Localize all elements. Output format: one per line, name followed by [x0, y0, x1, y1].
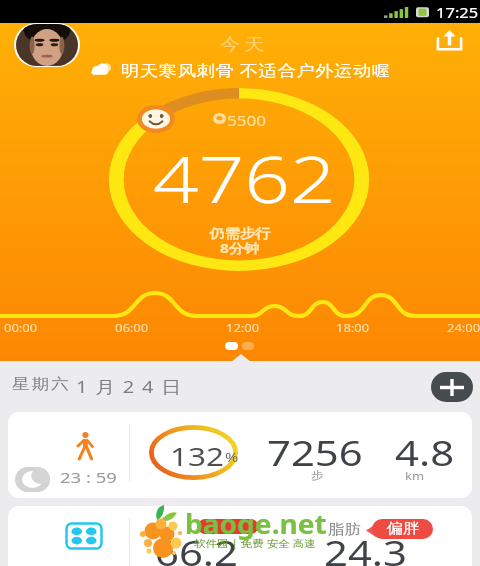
staticText: 7256	[267, 430, 363, 476]
staticText: km	[405, 468, 425, 483]
button[interactable]: 23 : 59	[8, 412, 472, 498]
staticText: 软件园 | 免费 安全 高速	[194, 536, 316, 550]
staticText: 今天	[218, 34, 266, 55]
staticText: 23 : 59	[60, 467, 118, 487]
staticText: 5500	[227, 110, 267, 130]
staticText: 66.2	[155, 530, 239, 566]
button[interactable]: Add	[431, 372, 473, 402]
staticText: 明天寒风刺骨 不适合户外运动喔	[121, 59, 391, 80]
staticText: 132	[170, 439, 224, 474]
staticText: 06:00	[115, 320, 149, 335]
button[interactable]: Share	[427, 26, 471, 54]
staticText: 星期六	[12, 375, 71, 394]
staticText: 24:00	[447, 320, 480, 335]
staticText: 00:00	[4, 320, 38, 335]
button[interactable]: Profile	[14, 23, 80, 67]
staticText: 4.8	[395, 430, 455, 476]
staticText: 步	[311, 468, 324, 482]
staticText: 18:00	[336, 320, 370, 335]
staticText: 12:00	[226, 320, 260, 335]
staticText: 偏胖	[386, 520, 419, 538]
staticText: 1月24日	[76, 375, 189, 398]
staticText: 仍需步行 8分钟	[209, 225, 270, 257]
staticText: 24.3	[324, 530, 408, 566]
staticText: 17:25	[436, 2, 479, 22]
staticText: %	[225, 448, 238, 466]
staticText: 脂肪	[328, 521, 361, 539]
button[interactable]: 66.2	[8, 506, 472, 566]
staticText: baoge.net	[185, 505, 327, 542]
staticText: 4762	[153, 134, 336, 223]
